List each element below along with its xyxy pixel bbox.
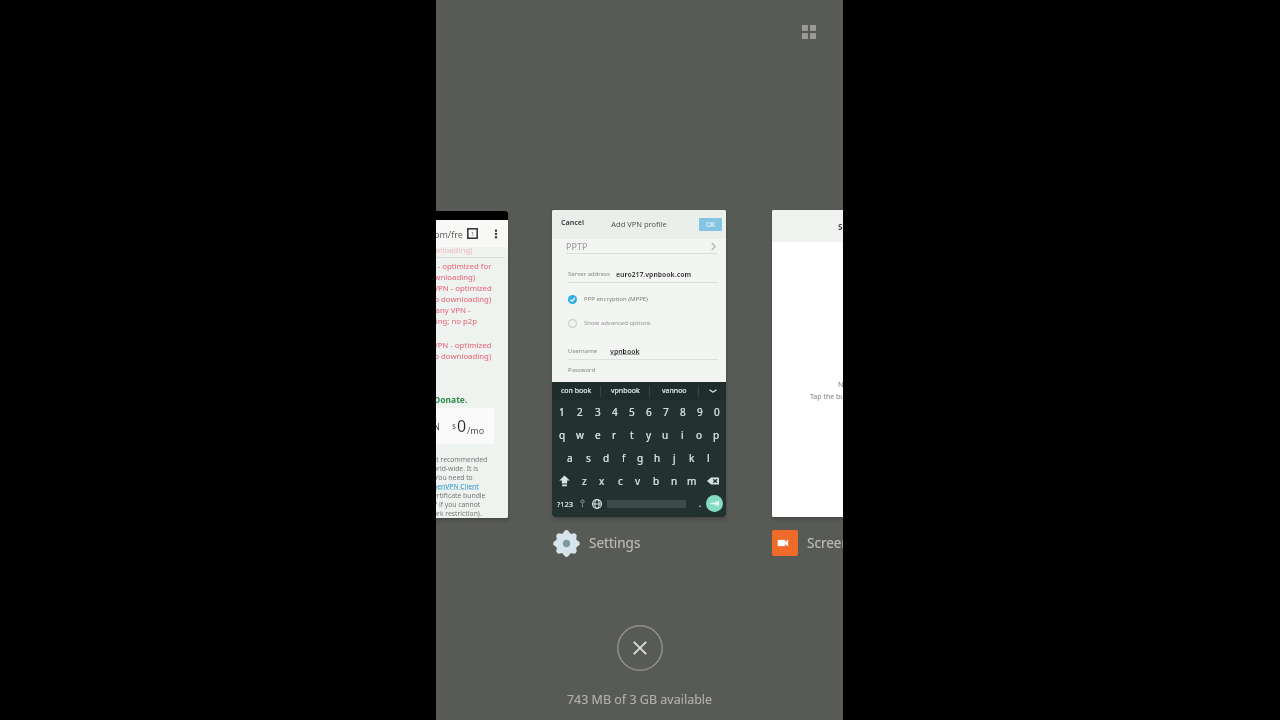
button[interactable]: Language [589,492,605,515]
staticText: OK [706,220,716,229]
button[interactable]: Cancel [557,216,589,230]
button[interactable]: a [561,446,579,469]
button[interactable]: w [571,423,589,446]
staticText: q [559,428,566,442]
button[interactable]: y [640,423,657,446]
button[interactable]: g [632,446,649,469]
staticText: rmany VPN - [436,305,471,316]
button[interactable]: m [683,469,701,492]
staticText: Settings [589,534,641,552]
staticText: vannoo [662,386,687,396]
button[interactable]: r [606,423,623,446]
button[interactable]: t [623,423,640,446]
button[interactable]: vannoo [650,382,699,400]
staticText: o [696,428,703,442]
button[interactable]: Shift [553,469,576,492]
staticText: i [681,428,684,442]
button[interactable]: 2 [571,400,589,423]
staticText: r [612,428,617,442]
button[interactable]: z [576,469,593,492]
button[interactable]: Cancel [552,210,726,517]
button[interactable]: h [649,446,666,469]
button[interactable]: om/fre [436,211,508,518]
button[interactable]: 6 [640,400,657,423]
button[interactable]: con book [552,382,601,400]
button[interactable]: b [647,469,665,492]
button[interactable]: More suggestions [699,382,726,400]
staticText: vpnbook [611,386,640,396]
staticText: w [576,428,584,442]
staticText: om/fre [436,228,463,240]
button[interactable]: App grid [799,22,819,42]
button[interactable]: Tabs [467,228,478,239]
button[interactable]: Emoji [576,492,589,515]
staticText: k [689,451,695,465]
button[interactable]: 3 [589,400,606,423]
button[interactable]: Backspace [701,469,725,492]
button[interactable]: 8 [674,400,691,423]
button[interactable]: 7 [657,400,674,423]
staticText: a [567,451,573,465]
staticText: downloading) [436,272,476,283]
button[interactable]: . [694,492,706,515]
staticText: ownloading) [436,245,473,256]
button[interactable]: ?123 [554,492,576,515]
button[interactable]: 4 [606,400,623,423]
button[interactable]: 0 [708,400,725,423]
staticText: 1 [471,230,475,238]
staticText: vpnbook [610,347,640,356]
staticText: 0 [457,415,467,437]
staticText: 5 [629,405,635,419]
button[interactable]: q [553,423,571,446]
button[interactable]: OK [699,218,722,231]
button[interactable]: l [700,446,717,469]
button[interactable]: d [597,446,615,469]
staticText: urfing; no p2p [436,316,478,327]
staticText: 6 [646,405,652,419]
staticText: e [595,428,601,442]
button[interactable]: 5 [623,400,640,423]
button[interactable]: n [665,469,683,492]
staticText: P if you cannot [436,500,481,509]
button[interactable]: v [629,469,647,492]
button[interactable]: Settings [553,529,641,557]
button[interactable]: 1 [553,400,571,423]
staticText: PPTP [566,240,588,252]
staticText: ertificate bundle [436,491,486,500]
staticText: y [646,428,652,442]
staticText: PN - optimized for [436,261,492,272]
button[interactable]: k [683,446,700,469]
staticText: penVPN Client [436,482,479,491]
staticText: z [582,474,587,488]
button[interactable]: i [674,423,691,446]
staticText: n [671,474,678,488]
staticText: m [687,474,697,488]
button[interactable]: e [589,423,606,446]
button[interactable]: Next [706,495,723,512]
staticText: c [618,474,623,488]
button[interactable]: x [593,469,611,492]
staticText: 0 [714,405,720,419]
button[interactable]: f [615,446,632,469]
button[interactable]: More options [490,228,502,240]
staticText: p [713,428,720,442]
staticText: . [699,498,702,509]
button[interactable]: Screen Recorder [772,529,843,557]
staticText: N [436,420,440,432]
button[interactable]: vpnbook [601,382,650,400]
staticText: N VPN - optimized [436,340,492,351]
button[interactable]: 9 [691,400,708,423]
button[interactable]: p [708,423,725,446]
staticText: 3 [595,405,601,419]
button[interactable]: Close all [617,625,663,671]
staticText: j [673,451,676,465]
button[interactable]: c [611,469,629,492]
button[interactable]: u [657,423,674,446]
button[interactable]: j [666,446,683,469]
staticText: l [707,451,710,465]
button[interactable]: o [691,423,708,446]
button[interactable]: s [579,446,597,469]
staticText: Donate. [436,394,468,406]
button[interactable]: Screen Recorder [772,210,843,517]
